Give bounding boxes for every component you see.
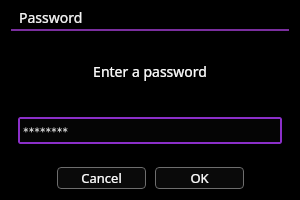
staticText: Password [19, 8, 83, 27]
button[interactable]: OK [155, 167, 244, 189]
staticText: Cancel [81, 169, 122, 187]
staticText: Enter a password [93, 62, 207, 81]
button[interactable] [18, 117, 282, 144]
staticText: OK [190, 169, 209, 187]
button[interactable]: Cancel [57, 167, 146, 189]
